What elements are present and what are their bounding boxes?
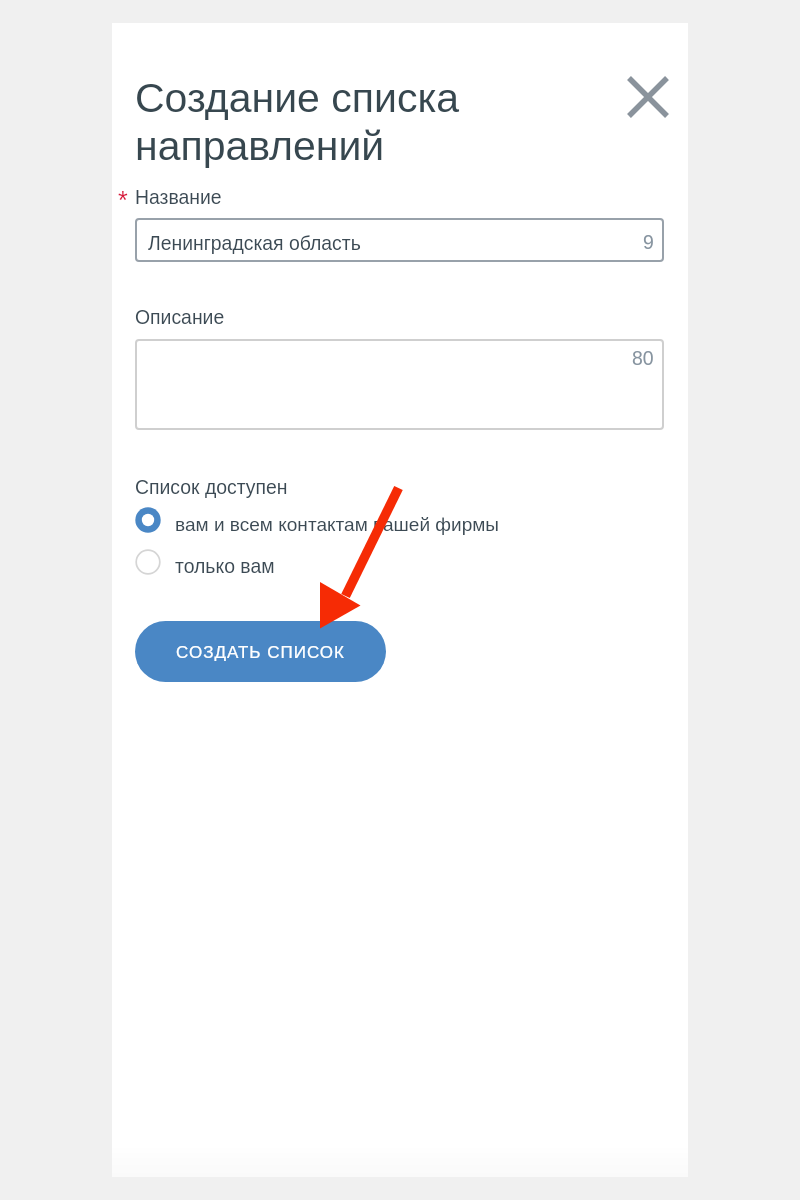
- button[interactable]: [135, 339, 664, 430]
- staticText: *: [118, 185, 128, 215]
- staticText: направлений: [135, 121, 385, 170]
- staticText: вам и всем контактам вашей фирмы: [175, 512, 500, 535]
- button[interactable]: СОЗДАТЬ СПИСОК: [135, 621, 386, 682]
- staticText: Список доступен: [135, 475, 288, 498]
- staticText: Ленинградская область: [148, 231, 361, 254]
- staticText: 9: [643, 230, 654, 253]
- staticText: Создание списка: [135, 73, 460, 122]
- staticText: СОЗДАТЬ СПИСОК: [176, 642, 345, 662]
- staticText: Название: [135, 185, 222, 208]
- other: Указатель на кнопку Создать список: [0, 0, 800, 1200]
- staticText: 80: [632, 346, 654, 369]
- button[interactable]: только вам: [131, 550, 275, 581]
- staticText: Описание: [135, 305, 225, 328]
- button[interactable]: [135, 218, 664, 262]
- button[interactable]: Закрыть: [618, 67, 678, 127]
- staticText: только вам: [175, 554, 275, 577]
- button[interactable]: вам и всем контактам вашей фирмы: [131, 508, 500, 539]
